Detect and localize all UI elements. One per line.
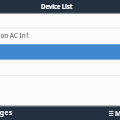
- button[interactable]: [0, 59, 120, 74]
- staticText: Device List: [41, 2, 73, 10]
- staticText: on AC In1: [0, 31, 29, 40]
- button[interactable]: Messages: [0, 106, 12, 120]
- button[interactable]: Menu: [106, 106, 120, 120]
- button[interactable]: [0, 44, 120, 59]
- staticText: Menu: [115, 109, 120, 120]
- button[interactable]: [0, 13, 120, 27]
- staticText: Messages: [0, 108, 13, 117]
- button[interactable]: on AC In1: [0, 29, 120, 45]
